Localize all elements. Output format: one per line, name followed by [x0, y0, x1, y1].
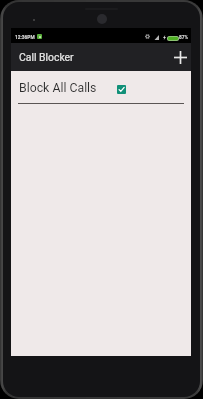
staticText: Block All Calls	[19, 81, 97, 95]
staticText: 12:36PM	[15, 35, 35, 41]
button[interactable]: Add	[169, 46, 191, 68]
staticText: Call Blocker	[19, 51, 74, 63]
staticText: 87%	[179, 35, 189, 41]
button[interactable]: Block All Calls	[11, 71, 191, 103]
